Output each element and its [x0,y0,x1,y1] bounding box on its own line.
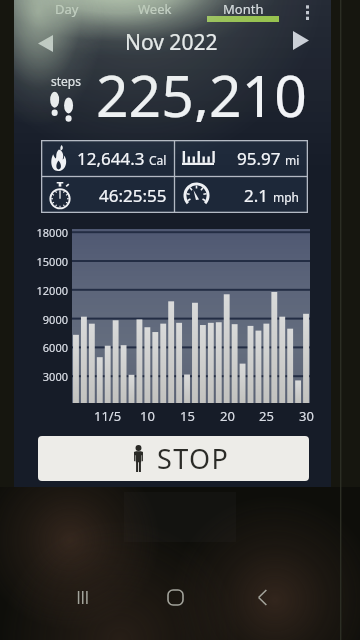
button[interactable]: STOP [38,436,309,481]
staticText: 9000 [0,312,68,327]
staticText: Week [138,0,172,18]
button[interactable]: More options [297,0,317,24]
button[interactable]: 46:25:55 [41,177,175,213]
staticText: 30 [299,407,314,422]
button[interactable]: Back [240,575,284,619]
button[interactable]: 2.1 [174,177,308,213]
staticText: mph [273,189,300,205]
staticText: steps [51,73,81,89]
staticText: 15000 [0,254,68,269]
staticText: 46:25:55 [99,184,167,207]
button[interactable]: 95.97 [174,140,308,176]
button[interactable]: Next month [284,26,318,54]
staticText: Cal [149,152,167,168]
staticText: 10 [140,407,155,422]
staticText: Nov 2022 [125,28,218,54]
staticText: STOP [157,440,230,477]
staticText: Day [55,0,79,18]
staticText: 12,644.3 [77,147,145,170]
staticText: 2.1 [244,184,269,207]
button[interactable]: Month [199,0,287,24]
staticText: 11/5 [94,407,122,422]
button[interactable]: Home [153,575,197,619]
staticText: 225,210 [96,56,307,122]
button[interactable]: Previous month [27,28,63,58]
staticText: Month [223,0,264,18]
staticText: mi [285,152,300,168]
staticText: 3000 [0,369,68,384]
staticText: 20 [220,407,235,422]
button[interactable]: Week [111,0,199,24]
staticText: 15 [180,407,195,422]
staticText: 18000 [0,225,68,240]
staticText: 12000 [0,283,68,298]
staticText: 6000 [0,340,68,355]
staticText: 95.97 [237,147,281,170]
staticText: 25 [259,407,274,422]
button[interactable]: Recent apps [60,575,104,619]
button[interactable]: Day [23,0,111,24]
button[interactable]: 12,644.3 [41,140,175,176]
